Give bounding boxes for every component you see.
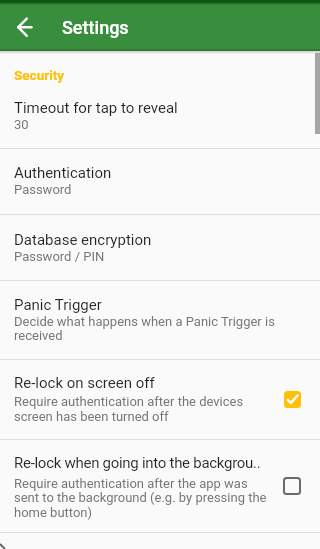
staticText: Re-lock when going into the backgrou.. — [14, 454, 261, 472]
staticText: Require authentication after the app was — [14, 476, 248, 491]
staticText: Re-lock on screen off — [14, 374, 155, 392]
staticText: Timeout for tap to reveal — [14, 99, 178, 117]
staticText: sent to the background (e.g. by pressing… — [14, 490, 267, 505]
staticText: Settings — [62, 17, 129, 38]
button[interactable]: Authentication — [0, 148, 320, 214]
button[interactable]: Panic Trigger — [0, 280, 320, 359]
staticText: received — [14, 328, 63, 343]
staticText: home button) — [14, 505, 93, 520]
staticText: Password — [14, 182, 72, 197]
button[interactable]: Timeout for tap to reveal — [0, 84, 320, 148]
staticText: 30 — [14, 117, 29, 132]
staticText: Database encryption — [14, 231, 152, 249]
staticText: Password / PIN — [14, 249, 105, 264]
staticText: Decide what happens when a Panic Trigger… — [14, 314, 275, 329]
staticText: screen has been turned off — [14, 409, 169, 424]
staticText: Security — [14, 67, 65, 83]
staticText: Require authentication after the devices — [14, 394, 244, 409]
button[interactable]: Re-lock when going into the backgrou.. — [0, 439, 320, 532]
staticText: Panic Trigger — [14, 296, 102, 314]
button[interactable]: Database encryption — [0, 214, 320, 280]
button[interactable]: Re-lock on screen off — [0, 359, 320, 439]
button[interactable] — [4, 6, 46, 48]
staticText: Authentication — [14, 164, 112, 182]
